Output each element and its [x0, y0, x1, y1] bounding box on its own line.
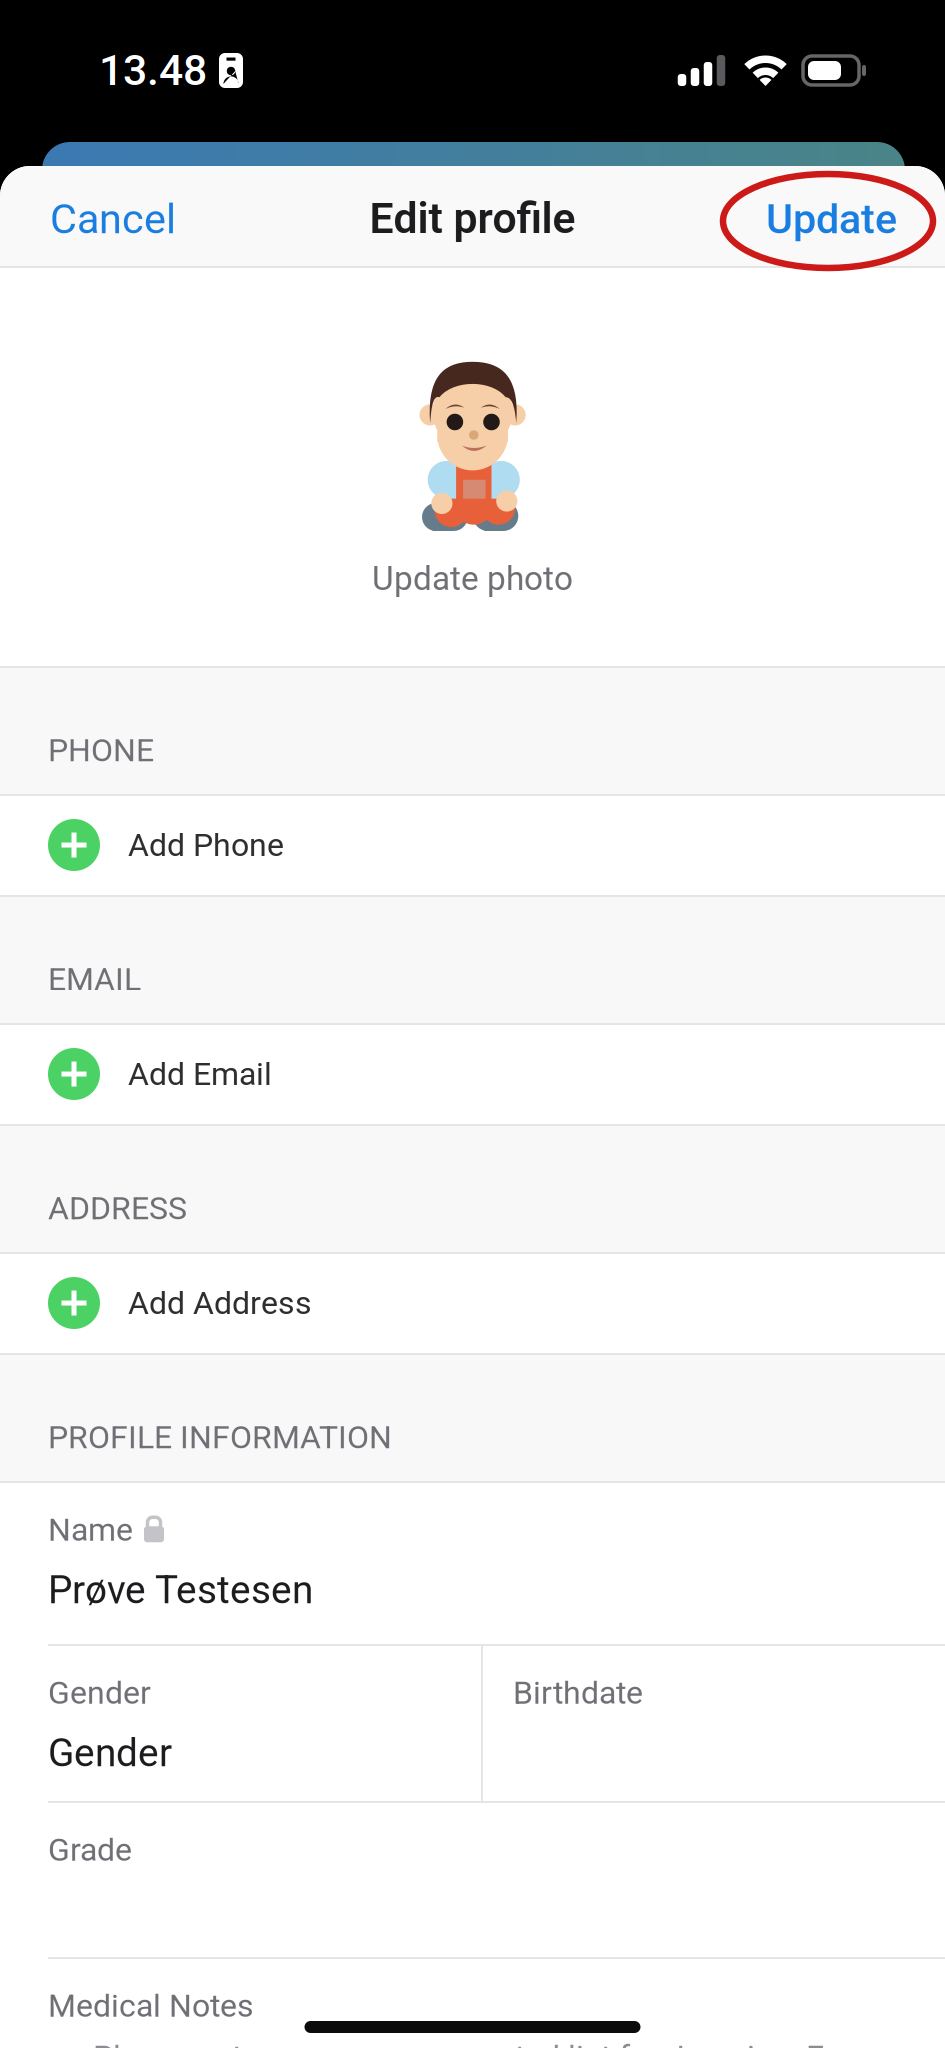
staticText: EMAIL: [48, 960, 141, 998]
button[interactable]: Add Address: [0, 1254, 945, 1353]
staticText: PROFILE INFORMATION: [48, 1418, 392, 1456]
staticText: 13.48: [99, 45, 207, 95]
staticText: ADDRESS: [48, 1189, 187, 1227]
button[interactable]: Add Phone: [0, 796, 945, 895]
staticText: Prøve Testesen: [48, 1567, 313, 1613]
staticText: Gender: [48, 1674, 151, 1711]
staticText: Add Email: [128, 1055, 272, 1093]
staticText: Cancel: [50, 195, 176, 243]
staticText: PHONE: [48, 731, 154, 769]
button[interactable]: Update: [746, 175, 915, 257]
button[interactable]: Cancel: [30, 175, 196, 257]
staticText: Add Phone: [128, 826, 284, 864]
staticText: Gender: [48, 1730, 172, 1776]
staticText: Update photo: [372, 559, 573, 598]
staticText: Update: [766, 195, 897, 243]
staticText: Name: [48, 1511, 133, 1548]
button[interactable]: Update photo: [348, 551, 597, 606]
staticText: Grade: [48, 1831, 132, 1868]
staticText: Medical Notes: [48, 1987, 254, 2024]
staticText: Add Address: [128, 1284, 312, 1322]
staticText: Please enter a comma separated list for …: [93, 2038, 858, 2048]
button[interactable]: Add Email: [0, 1025, 945, 1124]
staticText: Birthdate: [513, 1674, 643, 1711]
staticText: Edit profile: [369, 193, 575, 243]
